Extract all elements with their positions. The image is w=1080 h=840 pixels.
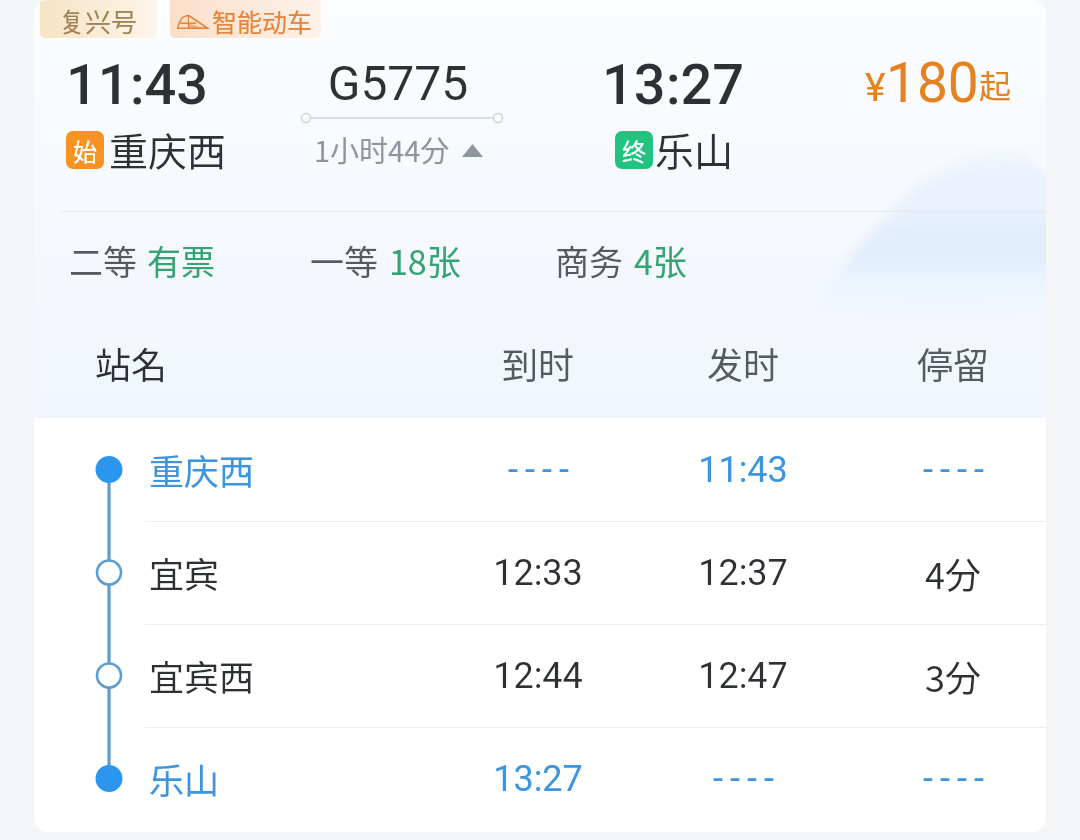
staticText: 有票 — [147, 236, 215, 285]
staticText: 终 — [622, 133, 646, 168]
staticText: ---- — [474, 449, 610, 491]
staticText: 1小时44分 — [314, 128, 450, 170]
button[interactable]: 宜宾西 — [34, 624, 1046, 727]
button[interactable]: Smart train — [170, 0, 321, 38]
button[interactable]: ¥ — [861, 47, 1016, 119]
staticText: 宜宾 — [149, 547, 220, 598]
staticText: 18张 — [389, 236, 461, 285]
other: Smart train — [177, 14, 208, 29]
staticText: 4分 — [885, 547, 1021, 599]
button[interactable]: 1小时44分 — [310, 124, 487, 174]
staticText: 11:43 — [66, 52, 209, 118]
staticText: 12:47 — [675, 655, 811, 697]
staticText: 12:33 — [470, 552, 606, 594]
button[interactable]: 复兴号 — [34, 0, 1046, 832]
staticText: 起 — [979, 61, 1012, 107]
staticText: 乐山 — [655, 121, 734, 177]
button[interactable]: 复兴号 — [40, 0, 157, 38]
staticText: ---- — [679, 758, 815, 800]
staticText: 一等 — [310, 236, 378, 285]
staticText: 二等 — [69, 236, 137, 285]
staticText: 重庆西 — [109, 121, 227, 177]
staticText: 4张 — [634, 236, 687, 285]
staticText: 3分 — [885, 650, 1021, 702]
staticText: 13:27 — [602, 52, 745, 118]
staticText: G5775 — [298, 55, 498, 111]
button[interactable]: 重庆西 — [34, 418, 1046, 521]
staticText: 12:37 — [675, 552, 811, 594]
staticText: 智能动车 — [212, 3, 313, 38]
staticText: 站名 — [95, 337, 168, 389]
staticText: 发时 — [675, 337, 811, 389]
staticText: 宜宾西 — [149, 650, 255, 701]
staticText: 11:43 — [675, 449, 811, 491]
staticText: 复兴号 — [59, 2, 138, 38]
staticText: 12:44 — [470, 655, 606, 697]
staticText: 商务 — [555, 236, 623, 285]
staticText: 13:27 — [470, 758, 606, 800]
staticText: ---- — [889, 449, 1025, 491]
staticText: 重庆西 — [149, 444, 255, 495]
staticText: ---- — [889, 758, 1025, 800]
button[interactable]: 宜宾 — [34, 521, 1046, 624]
staticText: ¥ — [865, 65, 886, 111]
staticText: 始 — [73, 133, 97, 168]
staticText: 到时 — [470, 337, 606, 389]
staticText: 停留 — [885, 337, 1021, 389]
staticText: 180 — [886, 51, 979, 115]
staticText: 乐山 — [149, 753, 220, 804]
button[interactable]: 乐山 — [34, 727, 1046, 830]
